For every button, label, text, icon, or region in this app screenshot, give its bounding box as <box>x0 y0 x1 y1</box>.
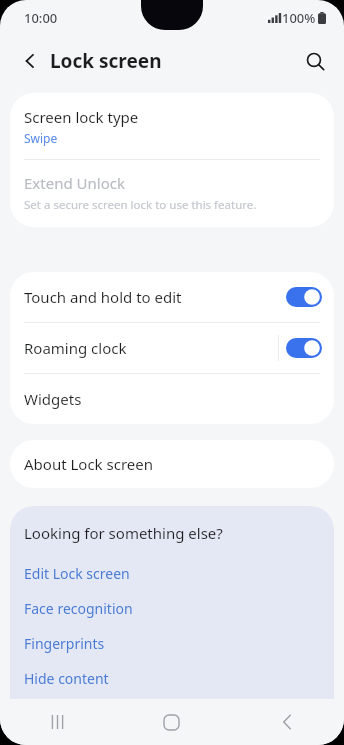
staticText: Extend Unlock <box>24 173 125 193</box>
staticText: Roaming clock <box>24 338 278 358</box>
staticText: Set a secure screen lock to use this fea… <box>24 197 257 213</box>
button[interactable]: Touch and hold to edit <box>10 272 334 322</box>
staticText: Hide content <box>24 669 109 688</box>
button[interactable]: Edit Lock screen <box>24 556 320 591</box>
button[interactable]: Widgets <box>10 374 334 424</box>
button[interactable]: Face recognition <box>24 591 320 626</box>
button[interactable]: Home <box>114 699 229 745</box>
other: Touch and hold to edit <box>286 287 322 307</box>
button[interactable]: Screen lock type <box>10 93 334 159</box>
staticText: 10:00 <box>24 9 58 27</box>
staticText: Looking for something else? <box>24 523 223 543</box>
button[interactable]: Roaming clock <box>10 323 334 373</box>
staticText: Edit Lock screen <box>24 564 130 583</box>
staticText: Notifications to show <box>24 704 163 723</box>
staticText: About Lock screen <box>24 454 153 474</box>
staticText: 100% <box>282 9 316 27</box>
button[interactable]: Back <box>10 41 50 81</box>
button[interactable]: Search <box>294 40 336 82</box>
button[interactable]: Notifications to show <box>24 696 320 731</box>
button[interactable]: Fingerprints <box>24 626 320 661</box>
staticText: Touch and hold to edit <box>24 287 286 307</box>
button[interactable]: About Lock screen <box>10 440 334 488</box>
button[interactable]: Extend Unlock <box>10 160 334 227</box>
button[interactable]: Recents <box>0 699 114 745</box>
other: Roaming clock <box>286 338 322 358</box>
staticText: Lock screen <box>50 48 162 74</box>
staticText: Fingerprints <box>24 634 105 653</box>
staticText: Widgets <box>24 389 82 409</box>
staticText: Face recognition <box>24 599 133 618</box>
staticText: Screen lock type <box>24 107 139 127</box>
button[interactable]: Hide content <box>24 661 320 696</box>
button[interactable]: Back <box>229 699 344 745</box>
staticText: Swipe <box>24 130 58 146</box>
